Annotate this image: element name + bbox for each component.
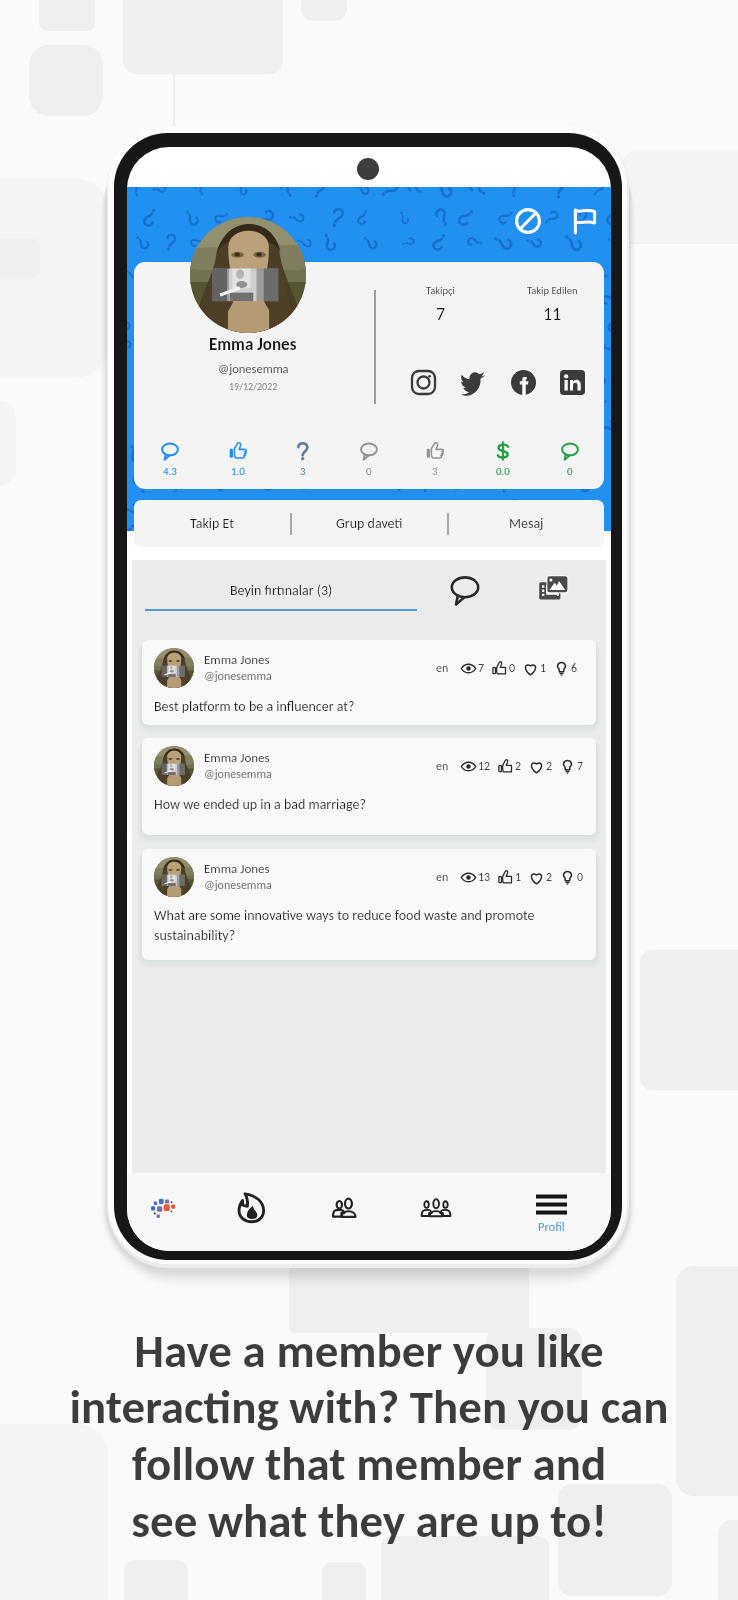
button[interactable]: 0 (544, 442, 596, 478)
staticText: Profil (538, 1219, 565, 1234)
button[interactable]: 4.3 (144, 442, 196, 478)
staticText: 7 (577, 759, 584, 774)
staticText: en (436, 759, 449, 774)
staticText: 7 (436, 303, 446, 325)
button[interactable]: Facebook (509, 368, 537, 396)
staticText: 1 (540, 661, 547, 676)
staticText: 0 (509, 661, 516, 676)
staticText: Emma Jones (204, 652, 270, 668)
button[interactable]: Emma Jones (142, 738, 596, 835)
button[interactable]: Block user (506, 199, 550, 243)
staticText: Takip Et (190, 515, 234, 532)
staticText: What are some innovative ways to reduce … (154, 907, 584, 944)
button[interactable]: 0 (343, 442, 395, 478)
staticText: @jonesemma (204, 878, 272, 893)
button[interactable]: Trending (222, 1178, 280, 1236)
staticText: Beyin fırtınalar (3) (230, 582, 333, 599)
button[interactable]: 3 (409, 442, 461, 478)
staticText: 11 (543, 303, 562, 325)
staticText: 13 (478, 870, 491, 885)
button[interactable]: Profil (520, 1177, 582, 1243)
staticText: Best platform to be a influencer at? (154, 698, 584, 715)
staticText: 3 (432, 465, 438, 478)
button[interactable]: Home (136, 1178, 194, 1236)
staticText: Mesaj (509, 515, 544, 532)
button[interactable]: 1.0 (212, 442, 264, 478)
staticText: Emma Jones (204, 861, 270, 877)
button[interactable]: Takip Et (134, 500, 290, 547)
button[interactable]: Report (563, 199, 607, 243)
staticText: 2 (546, 759, 553, 774)
staticText: Emma Jones (209, 334, 297, 355)
button[interactable]: Grup daveti (292, 500, 447, 547)
button[interactable]: Friends (316, 1178, 374, 1236)
button[interactable]: Emma Jones (142, 849, 596, 960)
staticText: @jonesemma (204, 669, 272, 684)
staticText: 1 (515, 870, 522, 885)
staticText: @jonesemma (204, 767, 272, 782)
staticText: Emma Jones (204, 750, 270, 766)
staticText: Have a member you like interacting with?… (19, 1322, 719, 1550)
staticText: 6 (571, 661, 578, 676)
button[interactable]: Media (520, 566, 586, 614)
staticText: en (436, 870, 449, 885)
staticText: Grup daveti (336, 515, 403, 532)
staticText: @jonesemma (218, 361, 289, 376)
staticText: 0 (366, 465, 372, 478)
button[interactable]: 3 (277, 442, 329, 478)
staticText: 2 (515, 759, 522, 774)
staticText: How we ended up in a bad marriage? (154, 796, 584, 813)
button[interactable]: Twitter (459, 368, 487, 396)
button[interactable]: Mesaj (449, 500, 604, 547)
staticText: 3 (300, 465, 306, 478)
staticText: Takipçi (426, 284, 455, 297)
button[interactable]: Beyin fırtınalar (3) (142, 566, 420, 614)
button[interactable]: Emma Jones (142, 640, 596, 725)
button[interactable]: 0.0 (477, 442, 529, 478)
staticText: 2 (546, 870, 553, 885)
button[interactable]: Profile photo of Emma Jones (190, 217, 306, 333)
staticText: 7 (478, 661, 485, 676)
staticText: 0.0 (496, 465, 510, 478)
button[interactable]: Comments (432, 566, 498, 614)
staticText: 1.0 (231, 465, 245, 478)
staticText: 0 (567, 465, 573, 478)
staticText: en (436, 661, 449, 676)
staticText: 12 (478, 759, 491, 774)
staticText: 0 (577, 870, 584, 885)
staticText: 19/12/2022 (229, 380, 278, 392)
staticText: Takip Edilen (527, 284, 578, 297)
button[interactable]: Instagram (409, 368, 437, 396)
staticText: 4.3 (163, 465, 177, 478)
button[interactable]: Groups (407, 1178, 465, 1236)
button[interactable]: LinkedIn (558, 368, 586, 396)
